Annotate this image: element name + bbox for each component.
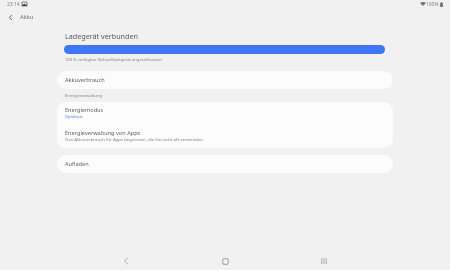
button[interactable]: Aufladen (57, 155, 393, 173)
staticText: 100% (426, 1, 439, 8)
button[interactable]: Akkuverbrauch (57, 71, 393, 89)
staticText: Energieverwaltung von Apps (65, 129, 141, 137)
button[interactable]: Zurück (2, 10, 18, 24)
button[interactable]: Energieverwaltung von Apps (57, 126, 393, 148)
button[interactable]: Startbildschirm (211, 250, 239, 270)
button[interactable]: Zuletzt verwendet (310, 250, 338, 270)
staticText: 100 % verfügbar (Schnellladegerät angesc… (65, 57, 162, 63)
staticText: Akku (20, 13, 34, 21)
staticText: 23:14 (7, 1, 20, 8)
staticText: Energieverwaltung (65, 93, 103, 99)
button[interactable]: Zurück (112, 250, 140, 270)
button[interactable]: Energiemodus (57, 102, 393, 126)
staticText: Aufladen (65, 160, 89, 168)
staticText: Optimiert (65, 114, 83, 119)
staticText: Den Akkuverbrauch für Apps begrenzen, di… (65, 136, 204, 142)
staticText: Akkuverbrauch (65, 76, 105, 84)
staticText: Ladegerät verbunden (65, 31, 138, 41)
staticText: Energiemodus (65, 106, 104, 114)
